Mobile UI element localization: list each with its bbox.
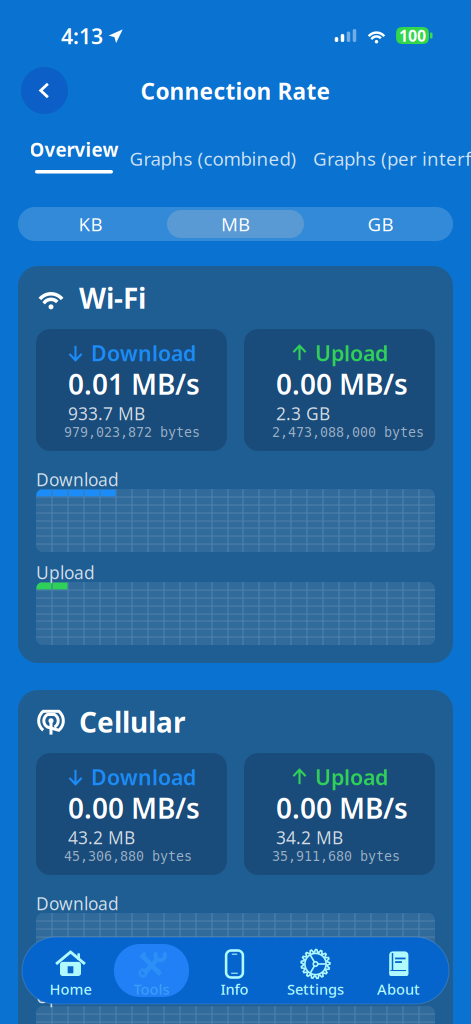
staticText: 4:13 bbox=[61, 22, 103, 50]
button[interactable]: Graphs (combined) bbox=[127, 141, 299, 176]
staticText: 43.2 MB bbox=[68, 826, 135, 849]
staticText: Download bbox=[91, 339, 196, 367]
staticText: GB bbox=[367, 212, 393, 236]
staticText: Connection Rate bbox=[140, 76, 330, 106]
staticText: Download bbox=[36, 892, 119, 915]
staticText: Settings bbox=[287, 979, 344, 999]
button[interactable]: Settings bbox=[274, 941, 357, 1000]
staticText: 34.2 MB bbox=[276, 826, 343, 849]
staticText: KB bbox=[78, 212, 102, 236]
staticText: Wi-Fi bbox=[79, 279, 146, 317]
staticText: About bbox=[377, 979, 420, 999]
staticText: 0.01 MB/s bbox=[68, 365, 200, 403]
staticText: 100 bbox=[399, 25, 426, 46]
staticText: Info bbox=[220, 979, 248, 999]
button[interactable]: Back bbox=[21, 67, 68, 114]
staticText: Upload bbox=[36, 985, 95, 1008]
staticText: Upload bbox=[315, 339, 388, 367]
staticText: 0.00 MB/s bbox=[276, 789, 408, 827]
staticText: Upload bbox=[315, 763, 388, 791]
button[interactable]: GB bbox=[308, 207, 453, 241]
button[interactable]: Tools bbox=[110, 941, 193, 1000]
staticText: 2,473,088,000 bytes bbox=[272, 425, 424, 440]
staticText: 2.3 GB bbox=[276, 402, 330, 425]
button[interactable]: Info bbox=[193, 941, 276, 1000]
staticText: 0.00 MB/s bbox=[68, 789, 200, 827]
staticText: Graphs (combined) bbox=[129, 146, 296, 171]
button[interactable]: MB bbox=[163, 207, 308, 241]
staticText: 35,911,680 bytes bbox=[272, 849, 400, 864]
staticText: Graphs (per interface) bbox=[313, 146, 471, 171]
staticText: Home bbox=[49, 979, 91, 999]
button[interactable]: KB bbox=[18, 207, 163, 241]
button[interactable]: Overview bbox=[24, 139, 124, 174]
button[interactable]: Graphs (per interface) bbox=[313, 141, 471, 176]
staticText: Download bbox=[36, 468, 119, 491]
staticText: MB bbox=[221, 212, 250, 236]
staticText: Tools bbox=[133, 979, 169, 999]
button[interactable]: About bbox=[357, 941, 440, 1000]
staticText: Cellular bbox=[79, 703, 186, 741]
staticText: 933.7 MB bbox=[68, 402, 145, 425]
staticText: Overview bbox=[29, 137, 118, 162]
staticText: 979,023,872 bytes bbox=[64, 425, 200, 440]
button[interactable]: Home bbox=[29, 941, 112, 1000]
staticText: Upload bbox=[36, 561, 95, 584]
staticText: Download bbox=[91, 763, 196, 791]
staticText: 45,306,880 bytes bbox=[64, 849, 192, 864]
staticText: 0.00 MB/s bbox=[276, 365, 408, 403]
